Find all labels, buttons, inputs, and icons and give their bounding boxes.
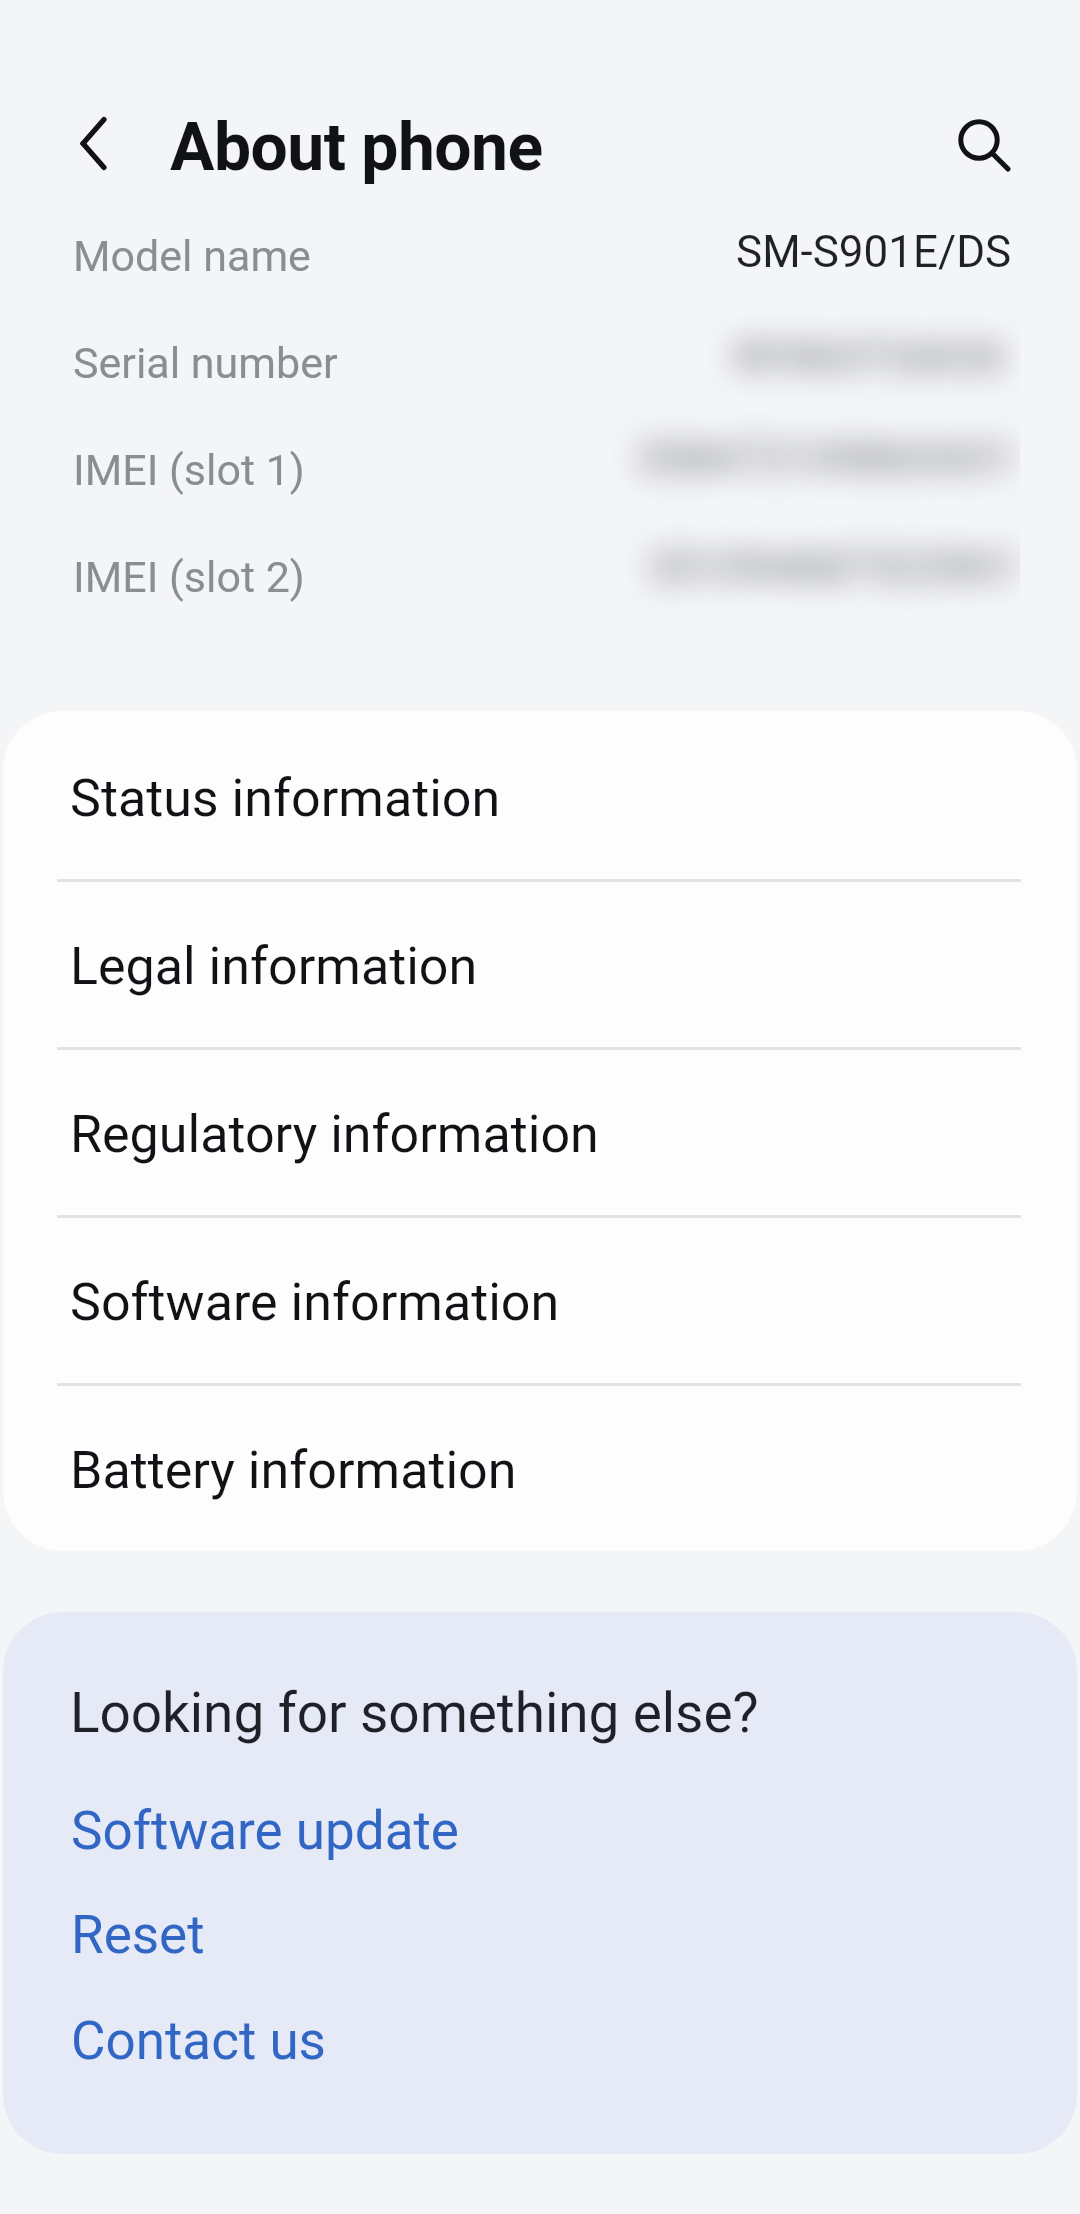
staticText: About phone [170,109,543,186]
staticText: Looking for something else? [70,1681,759,1745]
staticText: Status information [70,768,501,829]
staticText: Software update [71,1800,459,1862]
button[interactable]: Regulatory information [3,1047,1077,1215]
staticText: Reset [71,1904,205,1966]
button[interactable]: Status information [3,711,1077,879]
staticText: Software information [70,1272,560,1333]
button[interactable]: Navigate up [47,97,140,190]
button[interactable]: Search [933,93,1026,186]
staticText: Battery information [70,1440,517,1501]
staticText: IMEI (slot 1) [73,445,305,495]
staticText: RF8N3TQW2K [734,332,1007,382]
button[interactable]: Software update [41,1785,429,1877]
button[interactable]: Software information [3,1215,1077,1383]
staticText: Serial number [73,338,338,388]
staticText: Contact us [71,2010,326,2072]
staticText: Legal information [70,936,478,997]
button[interactable]: Reset [41,1889,175,1981]
staticText: 358472109865431 [636,432,1016,485]
button[interactable]: Battery information [3,1383,1077,1551]
staticText: Regulatory information [70,1104,599,1165]
staticText: 351094687523901 [648,542,1019,594]
button[interactable]: Contact us [41,1995,296,2087]
staticText: IMEI (slot 2) [73,552,305,602]
staticText: SM-S901E/DS [736,226,1012,278]
staticText: Model name [73,231,311,281]
button[interactable]: Legal information [3,879,1077,1047]
